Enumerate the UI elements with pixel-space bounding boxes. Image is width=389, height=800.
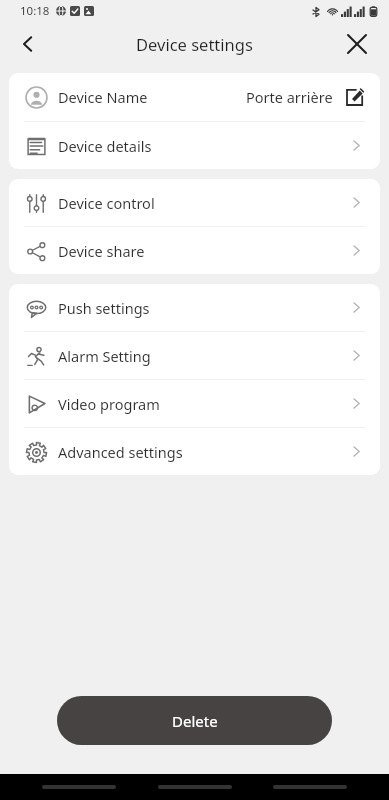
staticText: Push settings xyxy=(58,298,150,318)
staticText: Device Name xyxy=(58,87,148,107)
button[interactable]: Alarm Setting xyxy=(9,332,380,379)
button[interactable]: Device details xyxy=(9,122,380,169)
button[interactable]: Back xyxy=(8,24,48,64)
staticText: Device details xyxy=(58,136,152,156)
staticText: Device control xyxy=(58,193,155,213)
staticText: Device settings xyxy=(136,33,253,55)
staticText: Porte arrière xyxy=(246,87,333,107)
staticText: Delete xyxy=(172,711,218,731)
button[interactable]: Push settings xyxy=(9,284,380,331)
button[interactable]: System navigation xyxy=(273,785,347,789)
button[interactable]: Advanced settings xyxy=(9,428,380,475)
button[interactable]: Device Name xyxy=(9,73,380,121)
staticText: Advanced settings xyxy=(58,442,183,462)
button[interactable]: Edit device name xyxy=(342,84,368,110)
button[interactable]: Video program xyxy=(9,380,380,427)
button[interactable]: Device control xyxy=(9,179,380,226)
button[interactable]: System navigation xyxy=(158,785,232,789)
button[interactable]: Delete xyxy=(57,696,332,745)
staticText: Alarm Setting xyxy=(58,346,151,366)
button[interactable]: Device share xyxy=(9,227,380,274)
staticText: Device share xyxy=(58,241,145,261)
staticText: 10:18 xyxy=(20,3,50,19)
staticText: Video program xyxy=(58,394,160,414)
button[interactable]: System navigation xyxy=(42,785,116,789)
button[interactable]: Close xyxy=(337,24,377,64)
